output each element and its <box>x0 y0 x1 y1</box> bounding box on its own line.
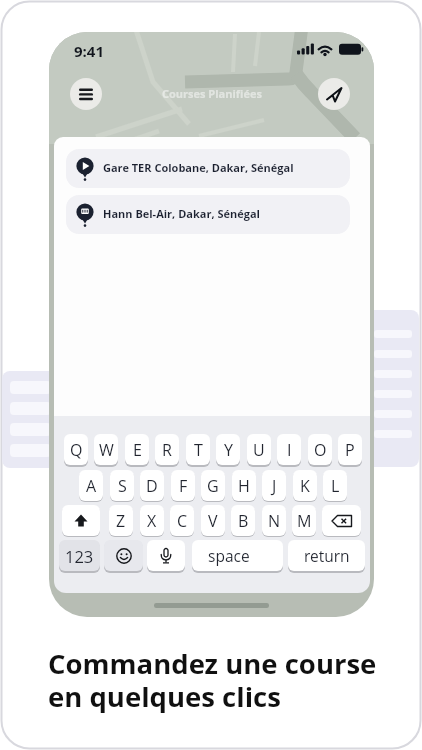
staticText: L <box>331 475 340 497</box>
staticText: J <box>272 475 277 497</box>
button[interactable] <box>147 540 185 571</box>
staticText: B <box>238 510 249 532</box>
button[interactable] <box>104 540 143 571</box>
staticText: R <box>162 439 172 461</box>
staticText: Q <box>70 439 83 461</box>
button[interactable]: J <box>262 470 286 501</box>
staticText: Hann Bel-Air, Dakar, Sénégal <box>103 206 260 221</box>
button[interactable]: X <box>140 505 164 536</box>
staticText: Courses Planifiées <box>162 86 262 101</box>
button[interactable]: O <box>308 434 332 465</box>
button[interactable]: I <box>277 434 301 465</box>
button[interactable]: H <box>232 470 256 501</box>
staticText: return <box>304 545 350 566</box>
button[interactable]: P <box>338 434 362 465</box>
staticText: S <box>118 475 127 497</box>
staticText: V <box>208 510 218 532</box>
button[interactable]: K <box>293 470 317 501</box>
button[interactable]: M <box>292 505 316 536</box>
button[interactable]: R <box>155 434 179 465</box>
button[interactable]: L <box>323 470 347 501</box>
staticText: Gare TER Colobane, Dakar, Sénégal <box>103 160 294 175</box>
button[interactable]: W <box>94 434 118 465</box>
button[interactable]: Hann Bel-Air, Dakar, Sénégal <box>66 195 350 234</box>
button[interactable]: S <box>110 470 134 501</box>
button[interactable]: Gare TER Colobane, Dakar, Sénégal <box>66 149 350 188</box>
button[interactable] <box>318 78 350 110</box>
staticText: F <box>179 475 188 497</box>
staticText: I <box>287 439 292 461</box>
staticText: T <box>194 439 203 461</box>
button[interactable]: E <box>125 434 149 465</box>
button[interactable]: Q <box>64 434 88 465</box>
staticText: 9:41 <box>74 41 104 61</box>
staticText: Z <box>116 510 126 532</box>
button[interactable]: 123 <box>59 540 100 571</box>
button[interactable]: space <box>192 540 283 571</box>
staticText: P <box>345 439 355 461</box>
staticText: space <box>208 545 250 566</box>
button[interactable] <box>70 78 102 110</box>
button[interactable]: N <box>262 505 286 536</box>
button[interactable]: Z <box>109 505 133 536</box>
staticText: N <box>268 510 281 532</box>
button[interactable]: F <box>171 470 195 501</box>
button[interactable]: Y <box>216 434 240 465</box>
button[interactable]: T <box>186 434 210 465</box>
button[interactable]: B <box>231 505 255 536</box>
button[interactable] <box>322 505 361 536</box>
button[interactable] <box>62 505 100 536</box>
staticText: M <box>297 510 312 532</box>
staticText: K <box>300 475 310 497</box>
staticText: A <box>86 475 97 497</box>
button[interactable]: G <box>201 470 225 501</box>
staticText: Y <box>224 439 233 461</box>
staticText: X <box>147 510 157 532</box>
button[interactable]: V <box>201 505 225 536</box>
staticText: E <box>133 439 142 461</box>
button[interactable]: D <box>140 470 164 501</box>
staticText: 123 <box>65 545 94 567</box>
staticText: H <box>238 475 250 497</box>
staticText: G <box>207 475 219 497</box>
staticText: C <box>177 510 188 532</box>
staticText: O <box>314 439 327 461</box>
staticText: Commandez une course en quelques clics <box>48 645 377 715</box>
button[interactable]: U <box>247 434 271 465</box>
staticText: D <box>146 475 158 497</box>
button[interactable]: A <box>79 470 103 501</box>
staticText: U <box>253 439 265 461</box>
staticText: W <box>99 439 114 461</box>
button[interactable]: C <box>170 505 194 536</box>
button[interactable]: return <box>288 540 365 571</box>
